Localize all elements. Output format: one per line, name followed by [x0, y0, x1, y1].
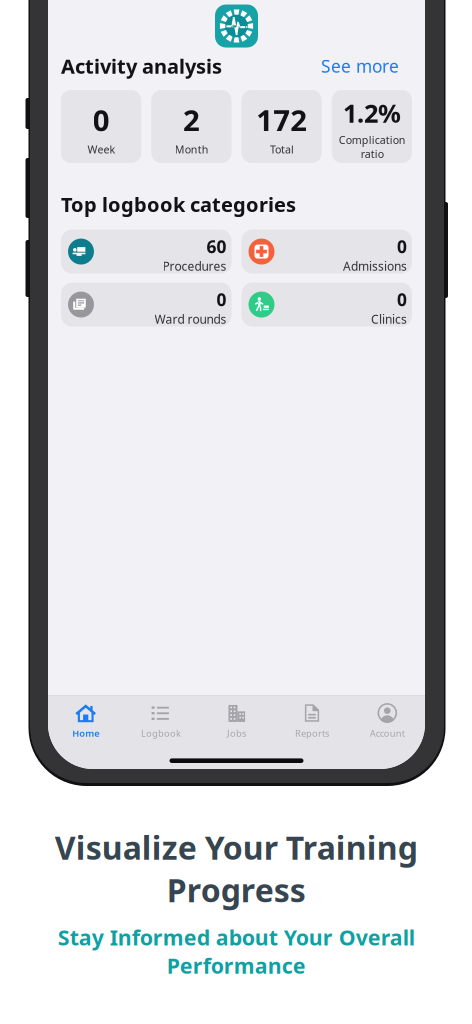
staticText: Month	[174, 142, 208, 157]
button[interactable]: Account	[350, 698, 425, 744]
staticText: Clinics	[371, 311, 407, 327]
staticText: Admissions	[343, 258, 407, 274]
staticText: Total	[270, 142, 294, 157]
button[interactable]: 0	[241, 230, 412, 274]
staticText: Logbook	[141, 727, 181, 739]
button[interactable]: Logbook	[123, 698, 199, 744]
staticText: Ward rounds	[154, 311, 226, 327]
staticText: 1.2%	[343, 96, 401, 130]
staticText: 0	[93, 100, 110, 139]
staticText: Top logbook categories	[61, 191, 296, 218]
staticText: Stay Informed about Your Overall Perform…	[57, 923, 414, 980]
button[interactable]: 60	[61, 230, 231, 274]
button[interactable]: Home	[48, 698, 123, 744]
button[interactable]: Jobs	[199, 698, 274, 744]
button[interactable]: 0	[241, 283, 412, 327]
staticText: 172	[256, 100, 307, 139]
staticText: 0	[397, 288, 407, 311]
button[interactable]: 0	[61, 283, 231, 327]
staticText: See more	[321, 54, 399, 77]
staticText: 60	[206, 235, 226, 258]
button[interactable]: See more	[321, 54, 412, 77]
staticText: Week	[87, 142, 115, 157]
button[interactable]: Reports	[274, 698, 350, 744]
staticText: 0	[216, 288, 226, 311]
staticText: Complication ratio	[338, 133, 405, 161]
staticText: Jobs	[227, 727, 246, 739]
staticText: 0	[397, 235, 407, 258]
staticText: Activity analysis	[61, 53, 222, 79]
staticText: Account	[370, 727, 405, 739]
staticText: Home	[72, 727, 99, 739]
staticText: Visualize Your Training Progress	[54, 826, 417, 911]
staticText: Reports	[295, 727, 329, 739]
staticText: 2	[183, 100, 200, 139]
staticText: Procedures	[162, 258, 226, 274]
